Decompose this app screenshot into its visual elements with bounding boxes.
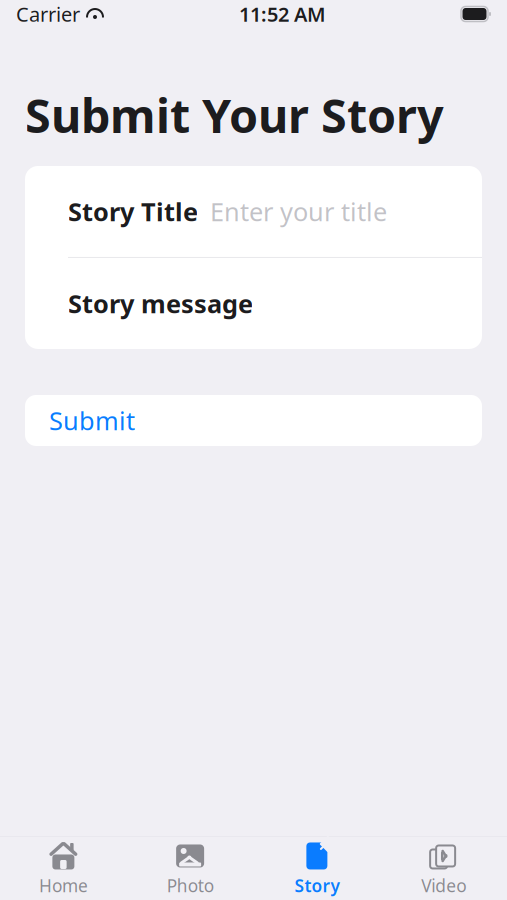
staticText: Story message [68, 287, 253, 320]
button[interactable]: Submit [25, 395, 482, 446]
staticText: Carrier [16, 1, 80, 27]
staticText: 11:52 AM [239, 1, 326, 27]
staticText: Home [39, 874, 88, 897]
staticText: Submit Your Story [25, 84, 444, 146]
button[interactable]: Home [0, 834, 127, 900]
staticText: Photo [167, 874, 214, 897]
staticText: Submit [49, 404, 135, 437]
staticText: Video [421, 874, 466, 897]
button[interactable]: Story [253, 834, 380, 900]
button[interactable]: Photo [127, 834, 254, 900]
button[interactable]: Video [380, 834, 507, 900]
staticText: Story Title [68, 195, 198, 228]
staticText: Story [294, 874, 339, 897]
staticText: Enter your title [210, 195, 387, 228]
